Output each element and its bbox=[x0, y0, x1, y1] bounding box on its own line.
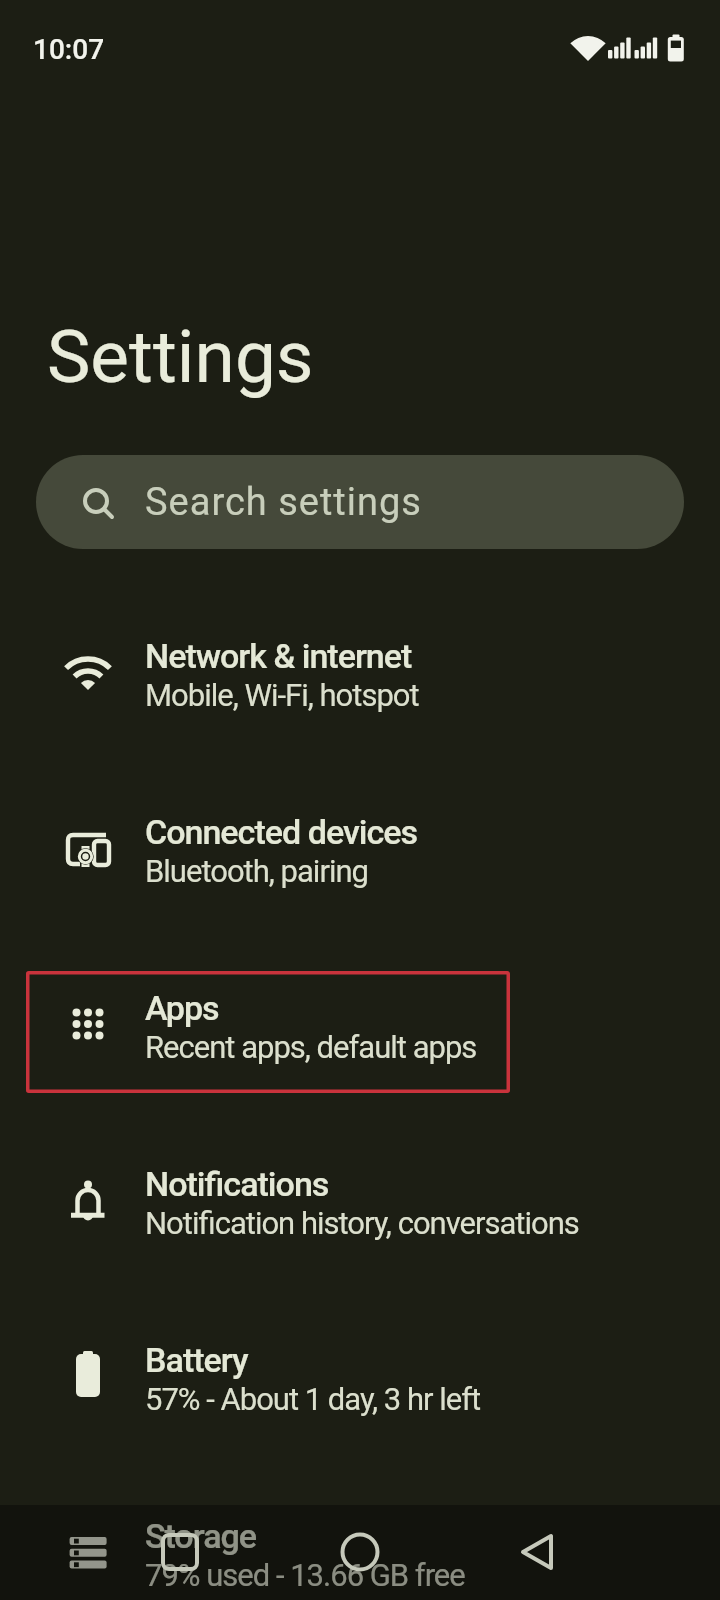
staticText: Search settings bbox=[145, 480, 422, 525]
staticText: 79% used - 13.66 GB free bbox=[145, 1557, 465, 1593]
button[interactable]: Search settings bbox=[36, 455, 684, 549]
button[interactable]: Apps bbox=[0, 936, 720, 1112]
staticText: Settings bbox=[47, 314, 314, 400]
button[interactable]: Notifications bbox=[0, 1112, 720, 1288]
button[interactable]: Battery bbox=[0, 1288, 720, 1464]
button[interactable]: Storage bbox=[0, 1464, 720, 1600]
staticText: Bluetooth, pairing bbox=[145, 853, 368, 889]
staticText: Notifications bbox=[145, 1164, 329, 1204]
staticText: Recent apps, default apps bbox=[145, 1029, 477, 1065]
button[interactable] bbox=[480, 1505, 720, 1600]
staticText: Notification history, conversations bbox=[145, 1205, 579, 1241]
staticText: Network & internet bbox=[145, 636, 412, 676]
button[interactable] bbox=[240, 1505, 480, 1600]
staticText: Apps bbox=[145, 988, 219, 1028]
staticText: Storage bbox=[145, 1516, 257, 1556]
button[interactable] bbox=[0, 1505, 240, 1600]
staticText: 10:07 bbox=[33, 33, 105, 66]
staticText: Connected devices bbox=[145, 812, 418, 852]
button[interactable]: Network & internet bbox=[0, 584, 720, 760]
button[interactable]: Connected devices bbox=[0, 760, 720, 936]
staticText: 57% - About 1 day, 3 hr left bbox=[145, 1381, 481, 1417]
staticText: Mobile, Wi-Fi, hotspot bbox=[145, 677, 419, 713]
staticText: Battery bbox=[145, 1340, 248, 1380]
